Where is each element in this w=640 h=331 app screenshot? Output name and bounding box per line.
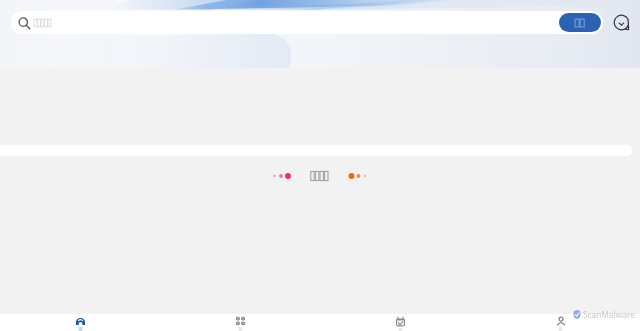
button[interactable] bbox=[11, 11, 603, 34]
button[interactable]: Customer service chat bbox=[609, 10, 634, 35]
button[interactable]: Profile bbox=[480, 314, 640, 331]
button[interactable]: Cart bbox=[320, 314, 480, 331]
button[interactable]: Categories bbox=[160, 314, 320, 331]
button[interactable] bbox=[559, 13, 601, 32]
staticText: ScanMalware bbox=[583, 309, 636, 319]
button[interactable]: Home bbox=[0, 314, 160, 331]
